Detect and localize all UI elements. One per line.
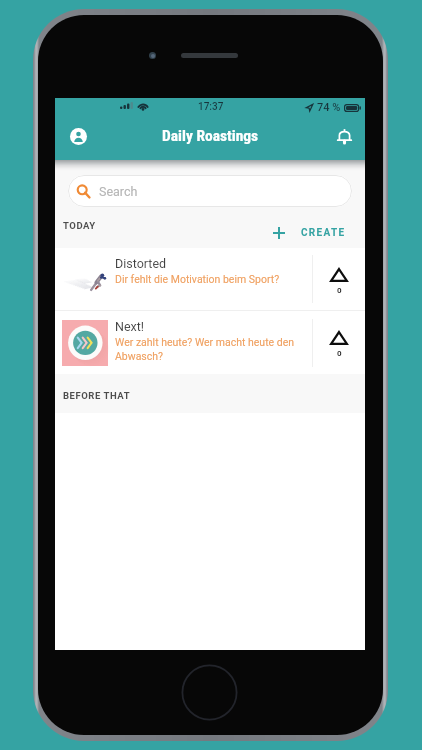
button[interactable]: Account (64, 122, 92, 150)
staticText: BEFORE THAT (63, 390, 131, 401)
staticText: 74 % (317, 101, 341, 114)
staticText: Dir fehlt die Motivation beim Sport? (115, 273, 280, 285)
staticText: Wer zahlt heute? Wer macht heute den Abw… (115, 336, 298, 363)
button[interactable]: Notifications (330, 122, 358, 150)
staticText: 17:37 (198, 101, 224, 113)
staticText: 0 (337, 286, 342, 295)
button[interactable]: Next! (55, 311, 365, 374)
staticText: 0 (337, 349, 342, 358)
button[interactable]: Upvote (313, 311, 365, 374)
staticText: Search (99, 184, 138, 199)
staticText: Daily Roastings (162, 127, 259, 145)
staticText: TODAY (63, 220, 96, 231)
staticText: CREATE (301, 227, 346, 239)
staticText: Distorted (115, 256, 167, 271)
staticText: Next! (115, 319, 145, 334)
button[interactable]: Upvote (313, 248, 365, 310)
button[interactable]: Search (68, 175, 352, 207)
button[interactable]: Distorted (55, 248, 365, 310)
button[interactable]: CREATE (267, 221, 365, 245)
